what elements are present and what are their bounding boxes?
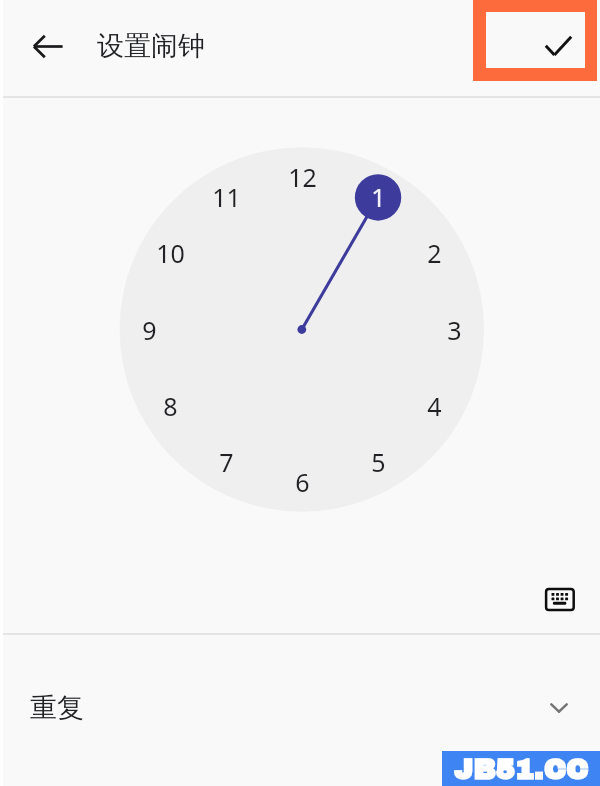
button[interactable]: 12 xyxy=(276,151,328,203)
staticText: 1 xyxy=(371,180,386,214)
button[interactable]: Back xyxy=(18,17,78,77)
staticText: 4 xyxy=(427,389,442,423)
button[interactable]: 1 xyxy=(352,171,404,223)
staticText: JB51.CC xyxy=(454,754,589,784)
staticText: 8 xyxy=(163,389,178,423)
button[interactable]: 5 xyxy=(352,436,404,488)
staticText: 10 xyxy=(156,236,185,270)
staticText: 3 xyxy=(447,313,462,347)
button[interactable]: Confirm xyxy=(473,0,597,81)
staticText: 7 xyxy=(219,445,234,479)
button[interactable]: Switch to text input mode xyxy=(536,580,584,620)
staticText: 9 xyxy=(142,313,157,347)
button[interactable]: 9 xyxy=(123,304,175,356)
staticText: 设置闹钟 xyxy=(97,29,205,63)
button[interactable]: 3 xyxy=(428,304,480,356)
staticText: 重复 xyxy=(30,691,84,725)
button[interactable]: 6 xyxy=(276,456,328,508)
button[interactable]: 8 xyxy=(144,380,196,432)
button[interactable]: 10 xyxy=(144,227,196,279)
button[interactable]: 11 xyxy=(200,171,252,223)
staticText: 12 xyxy=(288,160,317,194)
button[interactable]: 重复 xyxy=(0,635,600,781)
button[interactable]: 2 xyxy=(408,227,460,279)
button[interactable]: 4 xyxy=(408,380,460,432)
staticText: 6 xyxy=(295,465,310,499)
staticText: 5 xyxy=(371,445,386,479)
staticText: 11 xyxy=(212,180,241,214)
staticText: 2 xyxy=(427,236,442,270)
button[interactable]: 7 xyxy=(200,436,252,488)
